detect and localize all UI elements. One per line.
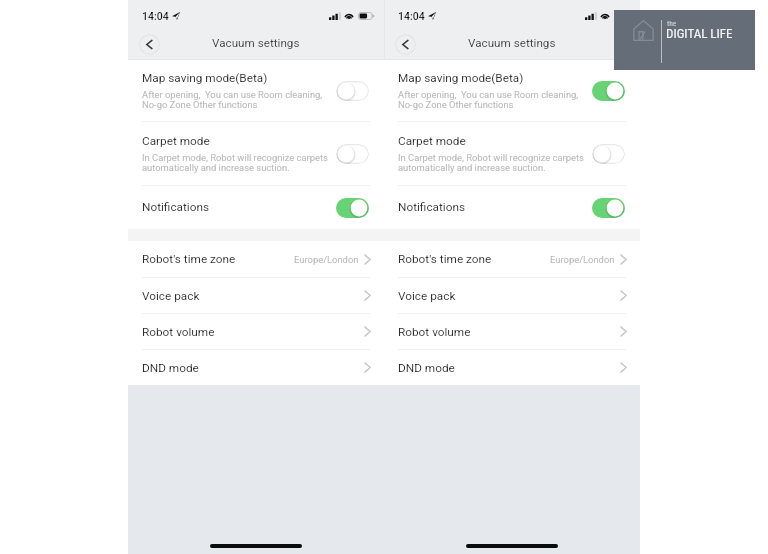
staticText: Robot volume [398, 325, 471, 339]
staticText: the [667, 19, 677, 28]
button[interactable]: Carpet mode [128, 122, 384, 185]
staticText: Map saving mode(Beta) [398, 71, 524, 85]
staticText: Vacuum settings [212, 36, 300, 50]
staticText: Robot volume [142, 325, 215, 339]
staticText: Europe/London [550, 254, 615, 265]
button[interactable]: Robot volume [384, 314, 640, 349]
button[interactable]: Switch off [336, 144, 369, 164]
staticText: Vacuum settings [468, 36, 556, 50]
button[interactable]: Carpet mode [384, 122, 640, 185]
button[interactable]: Robot's time zone [128, 241, 384, 277]
staticText: Europe/London [294, 254, 359, 265]
staticText: After opening, You can use Room cleaning… [142, 89, 323, 111]
button[interactable]: Switch on [592, 81, 625, 101]
button[interactable]: Map saving mode(Beta) [384, 60, 640, 121]
button[interactable]: Switch on [336, 198, 369, 218]
button[interactable]: Voice pack [384, 278, 640, 313]
staticText: Robot's time zone [142, 252, 236, 266]
button[interactable]: Switch on [592, 198, 625, 218]
staticText: In Carpet mode, Robot will recognize car… [142, 152, 328, 174]
staticText: In Carpet mode, Robot will recognize car… [398, 152, 584, 174]
staticText: 14:04 [142, 10, 169, 22]
button[interactable]: DND mode [128, 350, 384, 385]
button[interactable]: Voice pack [128, 278, 384, 313]
button[interactable]: Robot's time zone [384, 241, 640, 277]
button[interactable]: Notifications [128, 186, 384, 229]
staticText: Notifications [142, 200, 210, 214]
staticText: DIGITAL LIFE [666, 26, 733, 41]
staticText: DND mode [142, 361, 199, 375]
staticText: Carpet mode [142, 134, 210, 148]
staticText: Voice pack [398, 289, 456, 303]
button[interactable]: Robot volume [128, 314, 384, 349]
button[interactable]: Map saving mode(Beta) [128, 60, 384, 121]
button[interactable]: Switch off [592, 144, 625, 164]
staticText: Notifications [398, 200, 466, 214]
button[interactable]: Back [139, 34, 160, 55]
button[interactable]: Back [395, 34, 416, 55]
button[interactable]: DND mode [384, 350, 640, 385]
staticText: Robot's time zone [398, 252, 492, 266]
staticText: 14:04 [398, 10, 425, 22]
staticText: Voice pack [142, 289, 200, 303]
button[interactable]: Notifications [384, 186, 640, 229]
staticText: After opening, You can use Room cleaning… [398, 89, 579, 111]
staticText: Carpet mode [398, 134, 466, 148]
staticText: DND mode [398, 361, 455, 375]
staticText: Map saving mode(Beta) [142, 71, 268, 85]
button[interactable]: Switch off [336, 81, 369, 101]
